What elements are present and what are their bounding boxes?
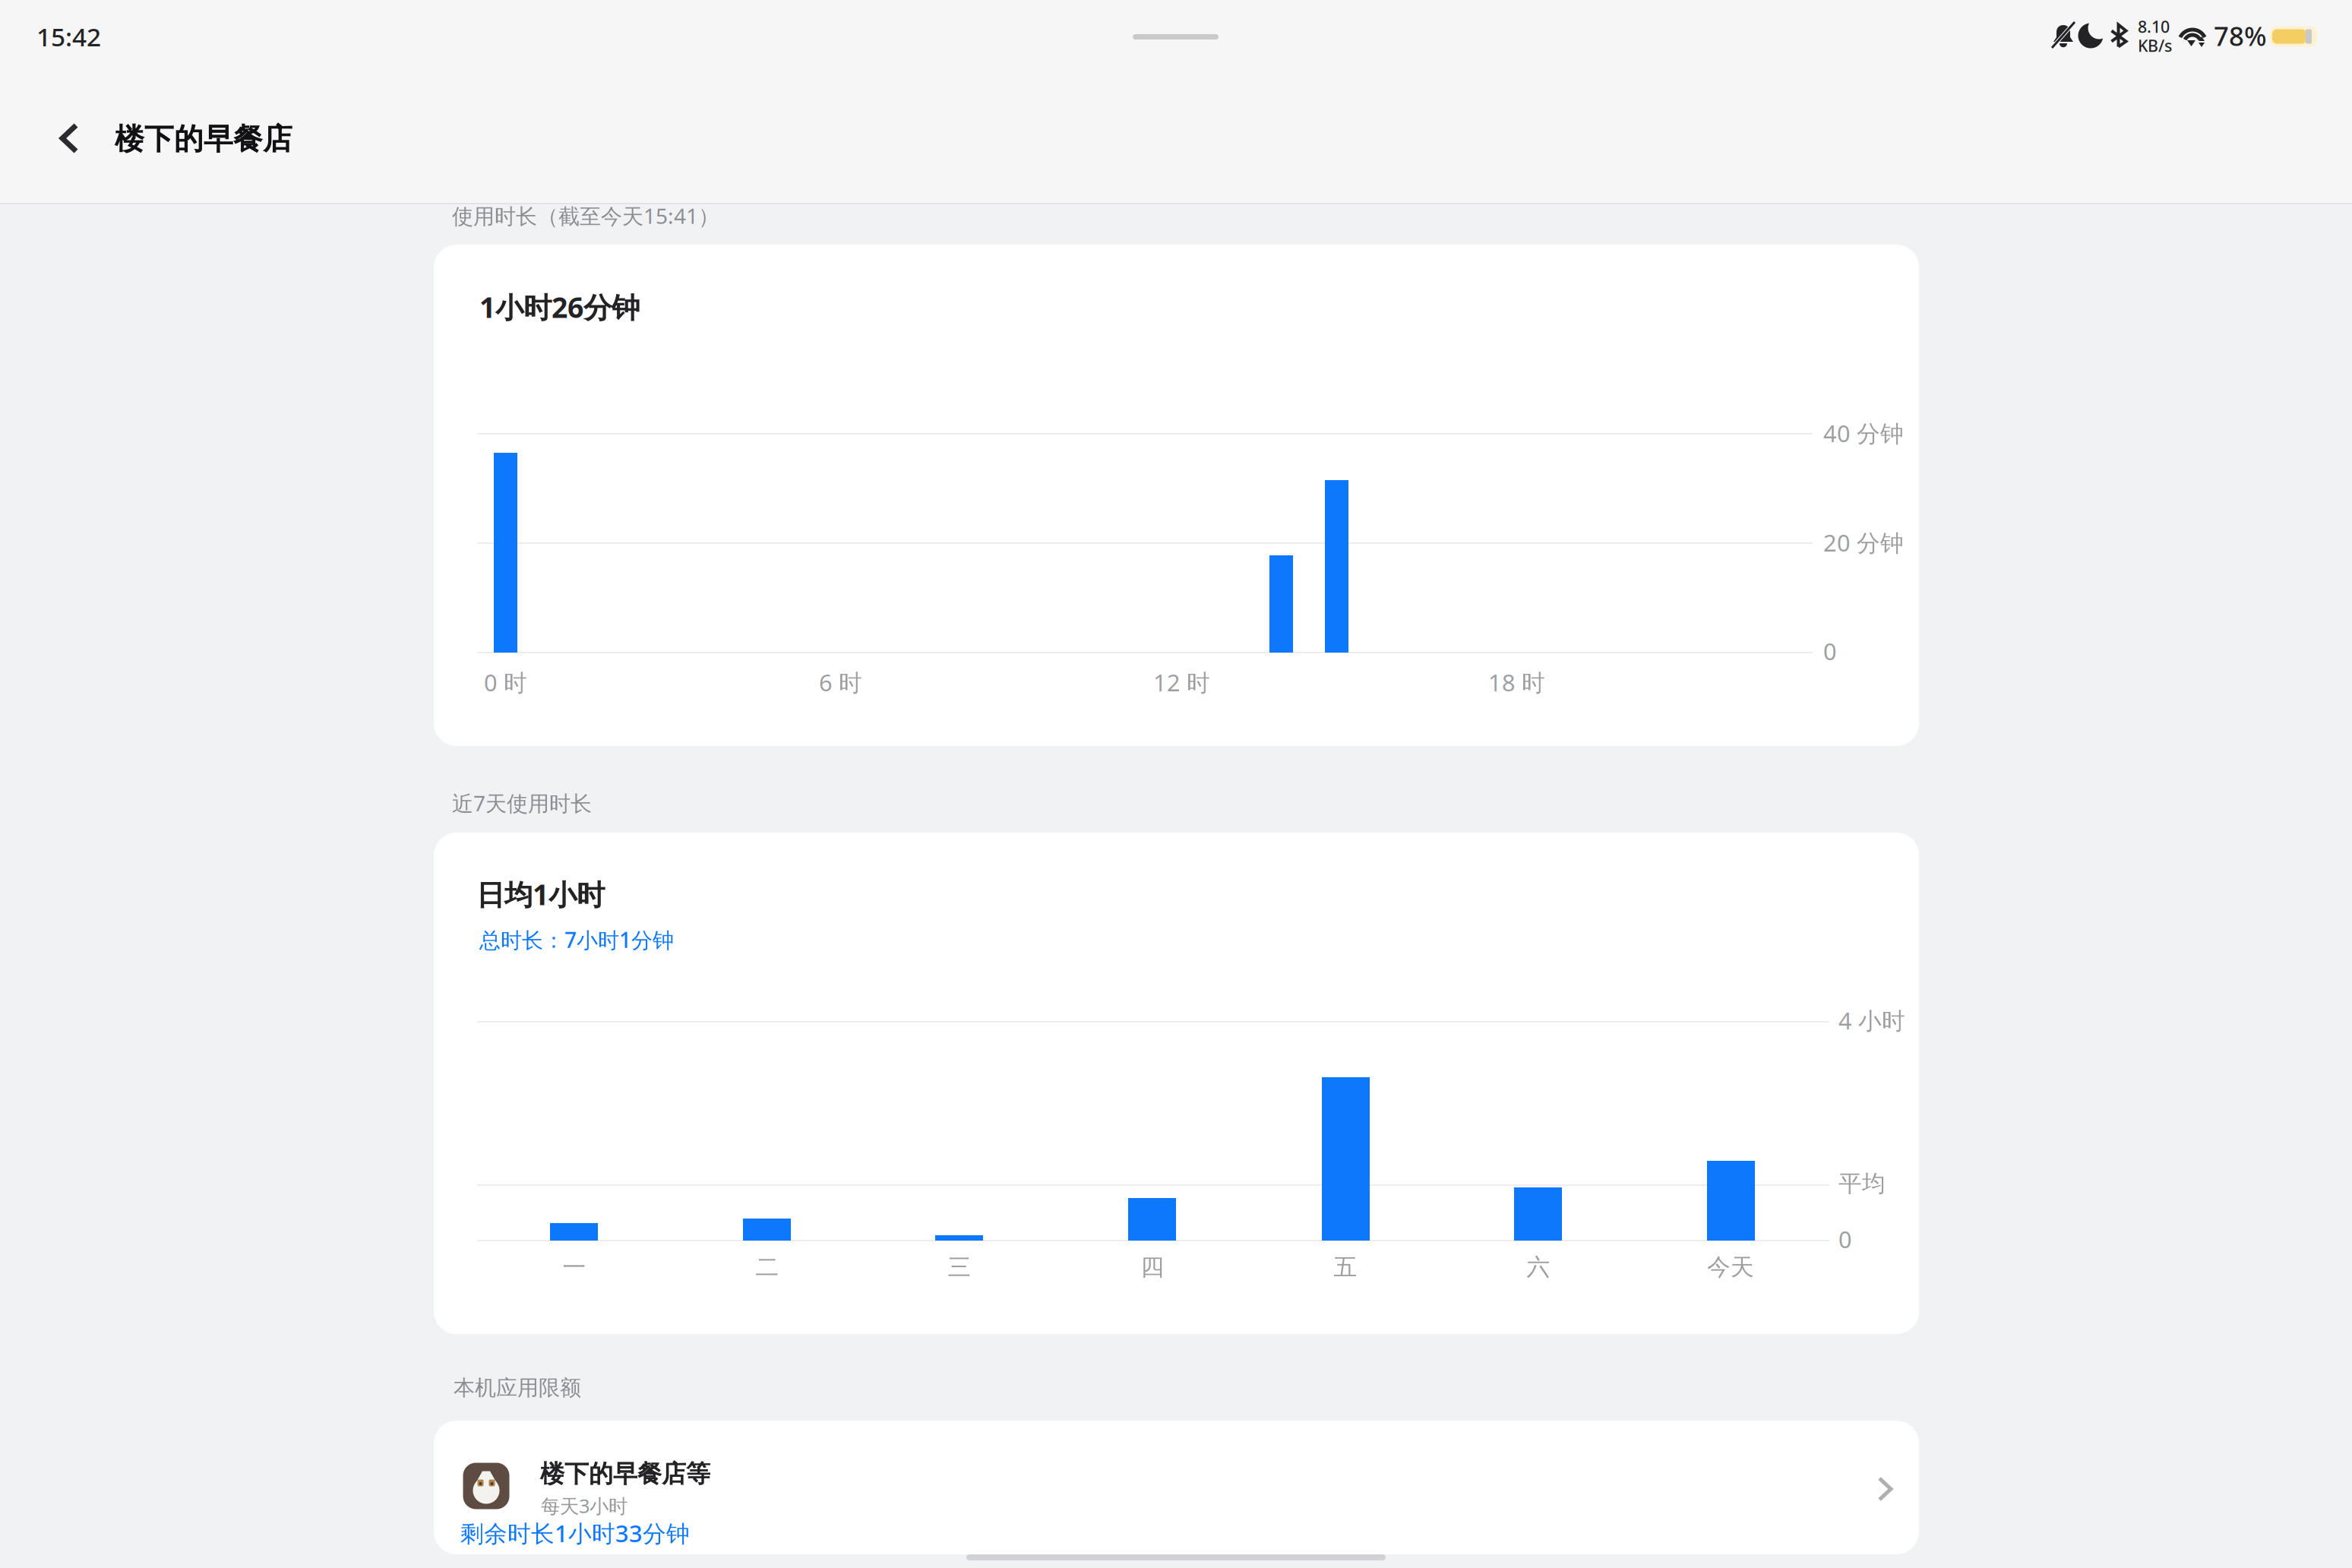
staticText: 三 xyxy=(948,1253,971,1282)
staticText: 0 xyxy=(1838,1224,1852,1254)
staticText: 0 时 xyxy=(484,667,527,698)
staticText: 1小时26分钟 xyxy=(479,288,640,326)
staticText: 使用时长（截至今天15:41） xyxy=(452,202,719,230)
staticText: 18 时 xyxy=(1488,667,1545,698)
staticText: 15:42 xyxy=(36,20,101,53)
staticText: 6 时 xyxy=(819,667,862,698)
staticText: 近7天使用时长 xyxy=(452,789,592,817)
staticText: 楼下的早餐店等 xyxy=(540,1459,710,1489)
button[interactable]: 楼下的早餐店等 xyxy=(434,1421,1919,1554)
staticText: 日均1小时 xyxy=(476,875,605,913)
staticText: 40 分钟 xyxy=(1823,418,1904,448)
staticText: 今天 xyxy=(1707,1253,1754,1282)
staticText: 总时长：7小时1分钟 xyxy=(479,926,674,954)
staticText: 六 xyxy=(1527,1253,1550,1282)
staticText: 四 xyxy=(1141,1253,1164,1282)
staticText: 楼下的早餐店 xyxy=(115,121,292,157)
staticText: 12 时 xyxy=(1153,667,1210,698)
staticText: 20 分钟 xyxy=(1823,527,1904,558)
staticText: 平均 xyxy=(1838,1169,1886,1198)
staticText: 4 小时 xyxy=(1838,1005,1905,1036)
staticText: 本机应用限额 xyxy=(454,1375,581,1401)
button[interactable]: 返回 xyxy=(1134,742,1218,826)
staticText: 一 xyxy=(563,1253,586,1282)
staticText: 78% xyxy=(2214,18,2267,53)
staticText: KB/s xyxy=(2138,35,2172,56)
staticText: 8.10 xyxy=(2138,16,2170,37)
staticText: 剩余时长1小时33分钟 xyxy=(460,1518,690,1548)
staticText: 0 xyxy=(1823,636,1837,666)
staticText: 五 xyxy=(1334,1253,1357,1282)
staticText: 每天3小时 xyxy=(541,1493,628,1518)
staticText: 二 xyxy=(756,1253,779,1282)
